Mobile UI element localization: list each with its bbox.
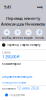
staticText: 1 250,00 ₽ xyxy=(2,54,19,59)
button[interactable]: видео xyxy=(23,29,33,39)
staticText: ▪▪▮ xyxy=(37,5,42,8)
staticText: Комментарий xyxy=(2,62,21,66)
button[interactable]: Оплачено xyxy=(0,85,46,91)
staticText: 12 июня 2024 xyxy=(17,87,39,90)
staticText: ✉ xyxy=(6,31,8,34)
staticText: ✆ xyxy=(17,31,19,34)
button[interactable]: Отправить квитанцию xyxy=(0,74,34,80)
staticText: Отправить квитанцию xyxy=(2,75,32,79)
staticText: Перевод клиенту xyxy=(6,15,40,21)
button[interactable]: сообщ. xyxy=(2,29,12,39)
staticText: ▭ xyxy=(27,31,30,34)
staticText: почта xyxy=(35,36,43,40)
staticText: видео xyxy=(24,36,33,40)
button[interactable]: Повторить платёж xyxy=(0,80,28,85)
staticText: Перевод с карты на карту xyxy=(7,43,40,47)
staticText: звонок xyxy=(13,36,23,40)
staticText: сообщ. xyxy=(2,36,12,40)
staticText: Повторить платёж xyxy=(2,81,26,84)
staticText: Оплачено xyxy=(2,87,16,90)
staticText: Поддержка xyxy=(9,93,24,97)
staticText: Александру Николаеву xyxy=(1,21,45,26)
button[interactable]: Поддержка xyxy=(0,91,46,98)
staticText: 9:41 xyxy=(4,4,11,10)
button[interactable]: Перевод с карты на карту xyxy=(0,41,46,49)
staticText: @ xyxy=(38,31,40,34)
button[interactable]: почта xyxy=(34,29,44,39)
staticText: Сумма xyxy=(2,51,10,54)
button[interactable]: звонок xyxy=(13,29,23,39)
